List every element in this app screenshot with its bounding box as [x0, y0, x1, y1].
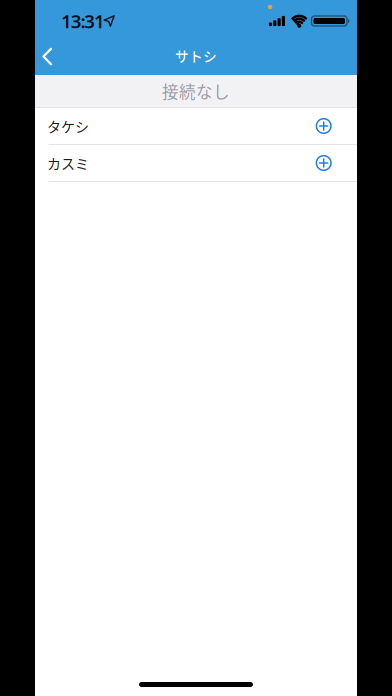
staticText: 接続なし [162, 79, 230, 103]
button[interactable]: カスミ [35, 145, 357, 181]
staticText: サトシ [175, 45, 217, 65]
button[interactable]: Back [35, 39, 52, 66]
staticText: カスミ [47, 153, 89, 173]
staticText: タケシ [47, 116, 89, 136]
button[interactable]: タケシ [35, 108, 357, 144]
staticText: 13:31 [61, 9, 105, 33]
